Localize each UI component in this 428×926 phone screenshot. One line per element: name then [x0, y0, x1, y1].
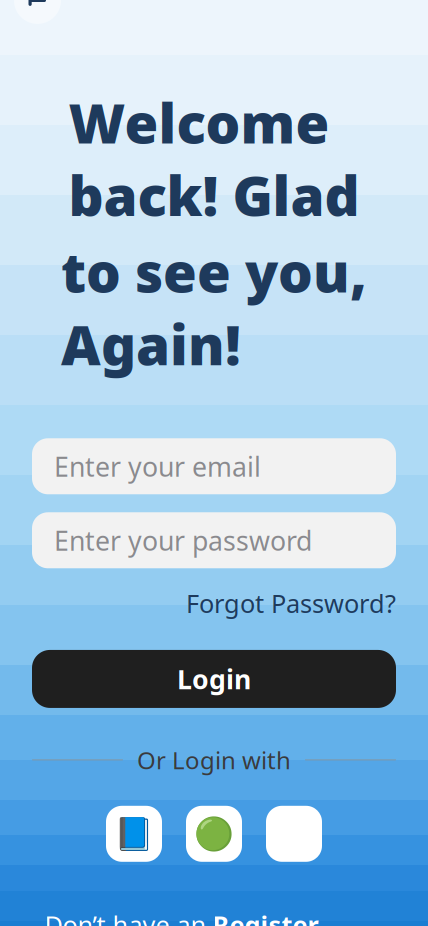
button[interactable]: Back: [14, 0, 61, 24]
staticText: Forgot Password?: [186, 586, 396, 620]
staticText: 📘: [114, 815, 154, 852]
button[interactable]: Sign in with Facebook: [106, 806, 162, 862]
button[interactable]: Enter your password: [32, 512, 396, 568]
staticText: Register Now: [212, 908, 318, 926]
staticText: Enter your email: [54, 449, 261, 484]
button[interactable]: Sign in with Google: [186, 806, 242, 862]
button[interactable]: Login: [32, 650, 396, 708]
staticText: Login: [177, 661, 251, 697]
staticText: Welcome back! Glad: [68, 86, 359, 231]
staticText: 🟢: [194, 815, 234, 852]
button[interactable]: Don’t have an account?: [44, 908, 383, 926]
staticText: Or Login with: [137, 744, 291, 776]
button[interactable]: Enter your email: [32, 438, 396, 494]
button[interactable]: Sign in with Apple: [266, 806, 322, 862]
staticText: to see you, Again!: [61, 235, 367, 380]
staticText: Enter your password: [54, 523, 312, 558]
button[interactable]: Forgot Password?: [186, 582, 396, 624]
staticText: Don’t have an account?: [44, 908, 206, 926]
